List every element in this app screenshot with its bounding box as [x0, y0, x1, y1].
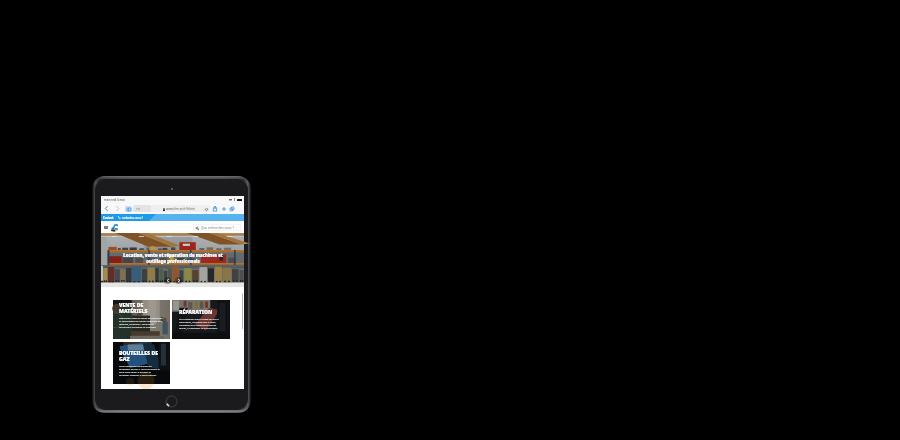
staticText: Que recherchez-vous ?: [201, 226, 234, 230]
button[interactable]: Show sidebar: [125, 206, 132, 212]
staticText: www.hlm-sn.fr/fr/site: [166, 207, 195, 211]
button[interactable]: Back: [103, 203, 110, 214]
staticText: BOUTEILLES DE GAZ: [119, 350, 158, 363]
button[interactable]: RÉPARATION: [172, 300, 230, 339]
staticText: site: [136, 207, 141, 211]
staticText: Contact: [103, 216, 114, 220]
button[interactable]: Tabs: [228, 205, 235, 212]
button[interactable]: Que recherchez-vous ?: [193, 224, 241, 231]
button[interactable]: New tab: [220, 205, 227, 212]
staticText: VENTE DE MATÉRIELS: [119, 302, 148, 315]
button[interactable]: Forward: [114, 203, 121, 214]
staticText: Si le matériel dont il s'agit en est la …: [179, 317, 220, 329]
staticText: Location, vente et réparation de machine…: [123, 252, 223, 264]
button[interactable]: www.hlm-sn.fr/fr/site: [151, 205, 210, 212]
button[interactable]: VENTE DE MATÉRIELS: [113, 300, 170, 339]
staticText: contactez-nous !: [122, 216, 143, 220]
staticText: RÉPARATION: [179, 309, 213, 316]
staticText: Vous n'êtes pas un expert en bouteilles …: [119, 364, 161, 376]
button[interactable]: Next slide: [175, 277, 182, 284]
button[interactable]: Other tab: [133, 205, 151, 212]
staticText: Spécialisés dans la vente de machines et…: [119, 316, 164, 328]
button[interactable]: Home: [165, 395, 178, 408]
button[interactable]: Menu: [103, 225, 108, 230]
button[interactable]: BOUTEILLES DE GAZ: [113, 342, 170, 384]
button[interactable]: Previous slide: [164, 277, 171, 284]
staticText: mercredi 6 mai: [104, 198, 125, 202]
button[interactable]: Contact: [101, 214, 143, 221]
button[interactable]: Share: [211, 205, 218, 212]
